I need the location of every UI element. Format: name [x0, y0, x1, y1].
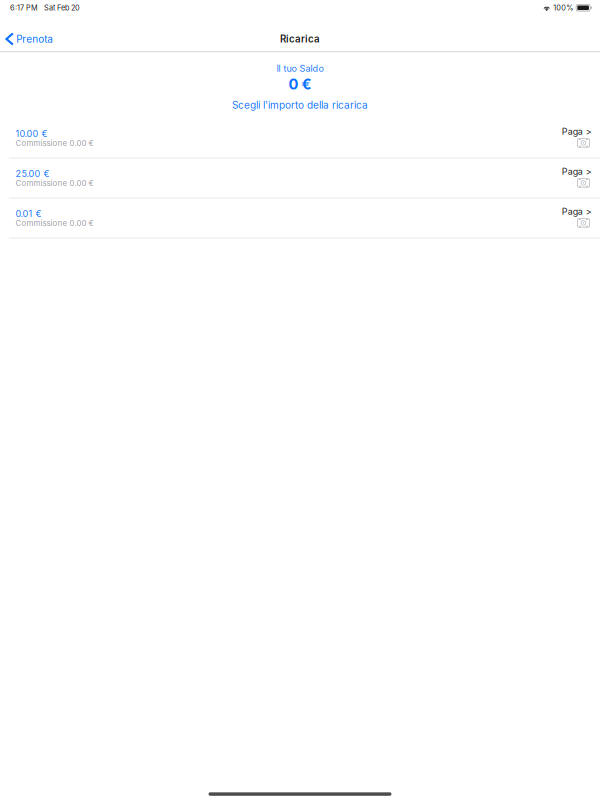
staticText: 0.01 € — [15, 208, 41, 219]
staticText: Scegli l'importo della ricarica — [232, 99, 368, 111]
staticText: Paga > — [562, 166, 592, 177]
button[interactable]: Prenota — [0, 24, 63, 54]
staticText: Paga > — [562, 206, 592, 217]
staticText: 100% — [553, 3, 573, 12]
staticText: Paga > — [562, 126, 592, 137]
staticText: Il tuo Saldo — [276, 63, 323, 74]
button[interactable]: 10.00 € — [0, 119, 600, 159]
staticText: Prenota — [16, 33, 53, 45]
staticText: Commissione 0.00 € — [15, 178, 93, 188]
staticText: 6:17 PM Sat Feb 20 — [10, 3, 80, 12]
staticText: 10.00 € — [15, 128, 47, 139]
staticText: Ricarica — [280, 33, 320, 45]
button[interactable]: 0.01 € — [0, 199, 600, 239]
staticText: 25.00 € — [15, 168, 49, 179]
button[interactable]: 25.00 € — [0, 159, 600, 199]
staticText: Commissione 0.00 € — [15, 218, 93, 228]
staticText: Commissione 0.00 € — [15, 138, 93, 148]
staticText: 0 € — [288, 75, 311, 93]
